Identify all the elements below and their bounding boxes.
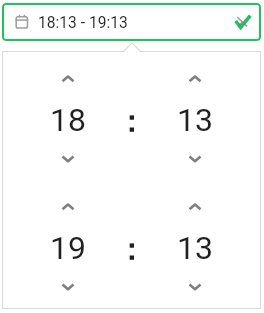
button[interactable]: Increase minute: [179, 197, 211, 217]
button[interactable]: Decrease minute: [179, 277, 211, 297]
button[interactable]: [2, 3, 261, 41]
staticText: 13: [177, 229, 213, 267]
button[interactable]: Increase hour: [52, 69, 84, 89]
button[interactable]: Increase minute: [179, 69, 211, 89]
staticText: 18:13 - 19:13: [38, 14, 128, 32]
button[interactable]: Decrease hour: [52, 149, 84, 169]
staticText: 19: [50, 229, 86, 267]
button[interactable]: Increase hour: [52, 197, 84, 217]
staticText: 18: [50, 101, 86, 139]
button[interactable]: Confirm: [234, 13, 252, 29]
button[interactable]: Decrease minute: [179, 149, 211, 169]
staticText: 13: [177, 101, 213, 139]
button[interactable]: Decrease hour: [52, 277, 84, 297]
